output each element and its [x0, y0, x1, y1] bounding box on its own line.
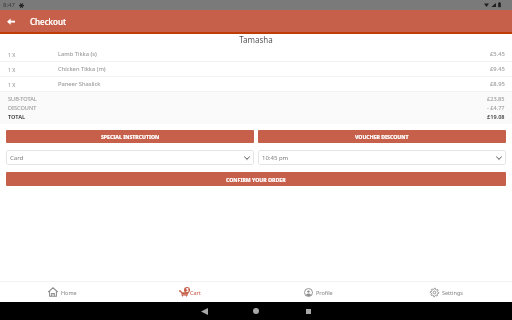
button[interactable]: VOUCHER DISCOUNT — [258, 130, 506, 143]
button[interactable]: 1 X — [0, 77, 512, 91]
button[interactable]: SPECIAL INSTRCUTION — [6, 130, 254, 143]
button[interactable]: Home — [230, 302, 282, 320]
button[interactable]: Recent apps — [282, 302, 334, 320]
staticText: TOTAL — [8, 113, 26, 121]
button[interactable]: Home — [0, 282, 128, 302]
staticText: 8:47 — [3, 1, 15, 9]
staticText: 10:45 pm — [262, 154, 289, 162]
staticText: Card — [10, 154, 24, 162]
staticText: DISCOUNT — [8, 104, 37, 112]
staticText: Settings — [442, 289, 463, 296]
staticText: 1 X — [8, 51, 16, 58]
button[interactable]: 1 X — [0, 62, 512, 76]
staticText: £23.85 — [487, 95, 505, 103]
button[interactable]: Back — [178, 302, 230, 320]
button[interactable]: Profile — [256, 282, 384, 302]
staticText: £8.95 — [490, 80, 505, 88]
button[interactable]: CONFIRM YOUR ORDER — [6, 172, 506, 186]
staticText: Cart — [190, 289, 201, 296]
button[interactable]: Card — [6, 150, 254, 165]
button[interactable]: 1 X — [0, 47, 512, 61]
staticText: Checkout — [30, 16, 67, 27]
staticText: Profile — [316, 289, 333, 296]
staticText: £9.45 — [490, 65, 505, 73]
button[interactable]: 3 — [128, 282, 256, 302]
staticText: £5.45 — [490, 50, 505, 58]
staticText: - £4.77 — [487, 104, 505, 112]
button[interactable]: Back — [0, 10, 21, 32]
staticText: Tamasha — [239, 34, 273, 45]
button[interactable]: Settings — [384, 282, 512, 302]
staticText: CONFIRM YOUR ORDER — [226, 176, 286, 183]
staticText: Chicken Tikka (m) — [58, 65, 106, 73]
staticText: Home — [61, 289, 77, 296]
staticText: £19.08 — [487, 113, 505, 121]
staticText: 1 X — [8, 81, 16, 88]
staticText: Paneer Shaslick — [58, 80, 101, 88]
staticText: SUB-TOTAL — [8, 95, 37, 103]
staticText: VOUCHER DISCOUNT — [355, 133, 409, 140]
staticText: SPECIAL INSTRCUTION — [101, 133, 160, 140]
staticText: Lamb Tikka (s) — [58, 50, 97, 58]
button[interactable]: 10:45 pm — [258, 150, 506, 165]
staticText: 1 X — [8, 66, 16, 73]
staticText: 3 — [186, 287, 189, 293]
